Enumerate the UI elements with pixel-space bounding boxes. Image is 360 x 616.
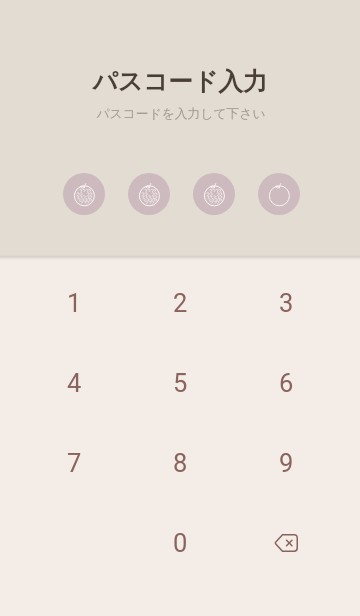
button[interactable]: 0 bbox=[127, 503, 233, 583]
staticText: 6 bbox=[279, 368, 294, 398]
staticText: 0 bbox=[173, 528, 188, 558]
button[interactable]: 9 bbox=[233, 423, 339, 503]
staticText: 7 bbox=[67, 448, 82, 478]
staticText: 2 bbox=[173, 288, 188, 318]
staticText: 4 bbox=[67, 368, 82, 398]
button[interactable]: 1 bbox=[21, 263, 127, 343]
button[interactable]: 5 bbox=[127, 343, 233, 423]
button[interactable]: 2 bbox=[127, 263, 233, 343]
button[interactable]: 4 bbox=[21, 343, 127, 423]
staticText: 5 bbox=[173, 368, 188, 398]
staticText: 3 bbox=[279, 288, 294, 318]
button[interactable]: 3 bbox=[233, 263, 339, 343]
staticText: 8 bbox=[173, 448, 188, 478]
button[interactable]: 6 bbox=[233, 343, 339, 423]
staticText: 9 bbox=[279, 448, 294, 478]
staticText: パスコード入力 bbox=[92, 66, 268, 97]
button[interactable]: Delete last digit bbox=[233, 503, 339, 583]
button[interactable]: 7 bbox=[21, 423, 127, 503]
staticText: 1 bbox=[67, 288, 82, 318]
staticText: パスコードを入力して下さい bbox=[96, 106, 266, 122]
button[interactable]: 8 bbox=[127, 423, 233, 503]
